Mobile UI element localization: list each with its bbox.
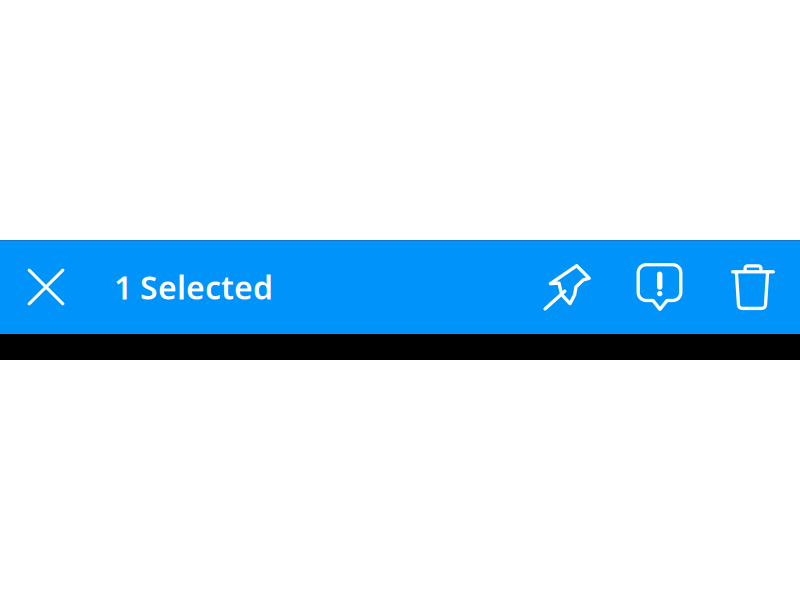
- button[interactable]: Pin: [520, 240, 613, 334]
- staticText: 1 Selected: [114, 266, 273, 308]
- button[interactable]: Close: [0, 240, 92, 334]
- button[interactable]: Delete: [706, 240, 800, 334]
- button[interactable]: Flag: [613, 240, 706, 334]
